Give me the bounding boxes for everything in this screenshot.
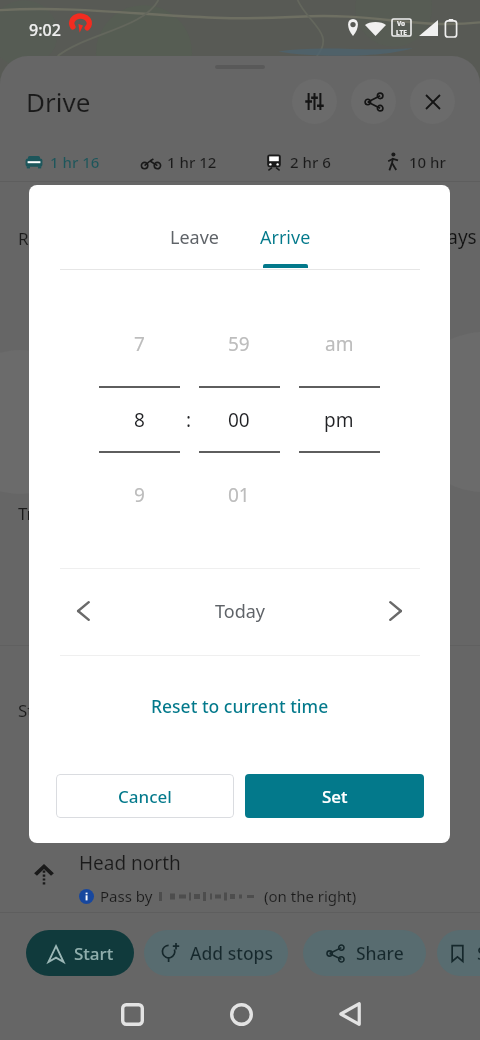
staticText: Reset to current time	[151, 694, 329, 718]
staticText: Recommended route	[18, 227, 187, 250]
staticText: S	[477, 941, 480, 965]
staticText: Cancel	[118, 785, 172, 808]
staticText: pm	[324, 407, 354, 433]
staticText: Drive	[26, 84, 91, 119]
staticText: 2 hr 6	[290, 152, 331, 172]
staticText: 7	[134, 331, 145, 357]
staticText: Set	[322, 785, 348, 808]
staticText: 1 hr 12	[167, 152, 217, 172]
staticText: Arrive	[260, 225, 311, 250]
button[interactable]: Close	[410, 79, 455, 124]
staticText: Today	[215, 599, 265, 624]
button[interactable]: 1 hr 16	[24, 146, 100, 178]
staticText: Traffic is light as usual	[18, 502, 194, 525]
staticText: 01	[228, 482, 250, 508]
staticText: :	[186, 407, 192, 433]
button[interactable]: S	[437, 930, 480, 976]
button[interactable]: Reset to current time	[149, 683, 330, 729]
button[interactable]: Add stops	[144, 930, 288, 976]
button[interactable]: Back	[327, 991, 373, 1037]
staticText: am	[325, 331, 354, 357]
button[interactable]: Next day	[373, 589, 417, 633]
staticText: 00	[228, 407, 250, 433]
button[interactable]: Leave	[147, 211, 241, 269]
staticText: Start	[74, 942, 114, 965]
button[interactable]: Share	[351, 79, 396, 124]
staticText: Pass by	[100, 886, 157, 906]
staticText: Leave	[170, 225, 219, 250]
button[interactable]: Previous day	[62, 589, 106, 633]
button[interactable]: Share	[303, 930, 426, 976]
staticText: (on the right)	[264, 886, 357, 906]
button[interactable]: Cancel	[56, 774, 234, 818]
staticText: 8	[134, 407, 145, 433]
button[interactable]: Home	[218, 991, 264, 1037]
button[interactable]: Options	[292, 79, 337, 124]
staticText: LTE	[396, 28, 407, 36]
staticText: Share	[356, 941, 404, 965]
button[interactable]: 10 hr	[383, 146, 446, 178]
staticText: 59	[228, 331, 250, 357]
staticText: Arrives in 3 days	[331, 224, 477, 250]
button[interactable]: Recents	[109, 991, 155, 1037]
staticText: Head north	[79, 850, 181, 876]
button[interactable]: 2 hr 6	[264, 146, 331, 178]
staticText: 10 hr	[409, 152, 446, 172]
button[interactable]: Arrive	[238, 211, 332, 269]
staticText: Vo	[397, 19, 406, 28]
button[interactable]: Set	[245, 774, 424, 818]
staticText: 9:02	[29, 19, 61, 41]
button[interactable]: 1 hr 12	[141, 146, 217, 178]
staticText: Add stops	[190, 941, 273, 965]
staticText: 1 hr 16	[50, 152, 100, 172]
staticText: Steps & more	[18, 699, 126, 722]
button[interactable]: Start	[26, 930, 134, 976]
staticText: 9	[134, 482, 145, 508]
